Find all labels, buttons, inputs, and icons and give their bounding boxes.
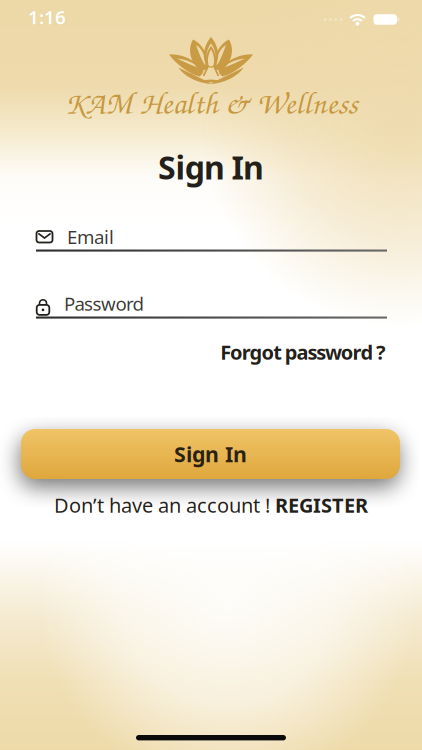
staticText: Sign In [174, 440, 247, 468]
staticText: KAM Health & Wellness [64, 81, 357, 123]
staticText: 1:16 [28, 5, 66, 29]
staticText: Don’t have an account ! [54, 492, 270, 518]
button[interactable]: Forgot password ? [220, 340, 386, 364]
button[interactable]: Password [0, 290, 422, 319]
staticText: Sign In [158, 146, 264, 188]
button[interactable]: Sign In [21, 429, 400, 479]
staticText: Email [67, 224, 114, 249]
staticText: REGISTER [275, 492, 368, 518]
button[interactable]: Don’t have an account ! [54, 493, 368, 517]
button[interactable]: Email [0, 224, 422, 252]
staticText: Password [64, 291, 143, 316]
staticText: Forgot password ? [220, 339, 386, 365]
